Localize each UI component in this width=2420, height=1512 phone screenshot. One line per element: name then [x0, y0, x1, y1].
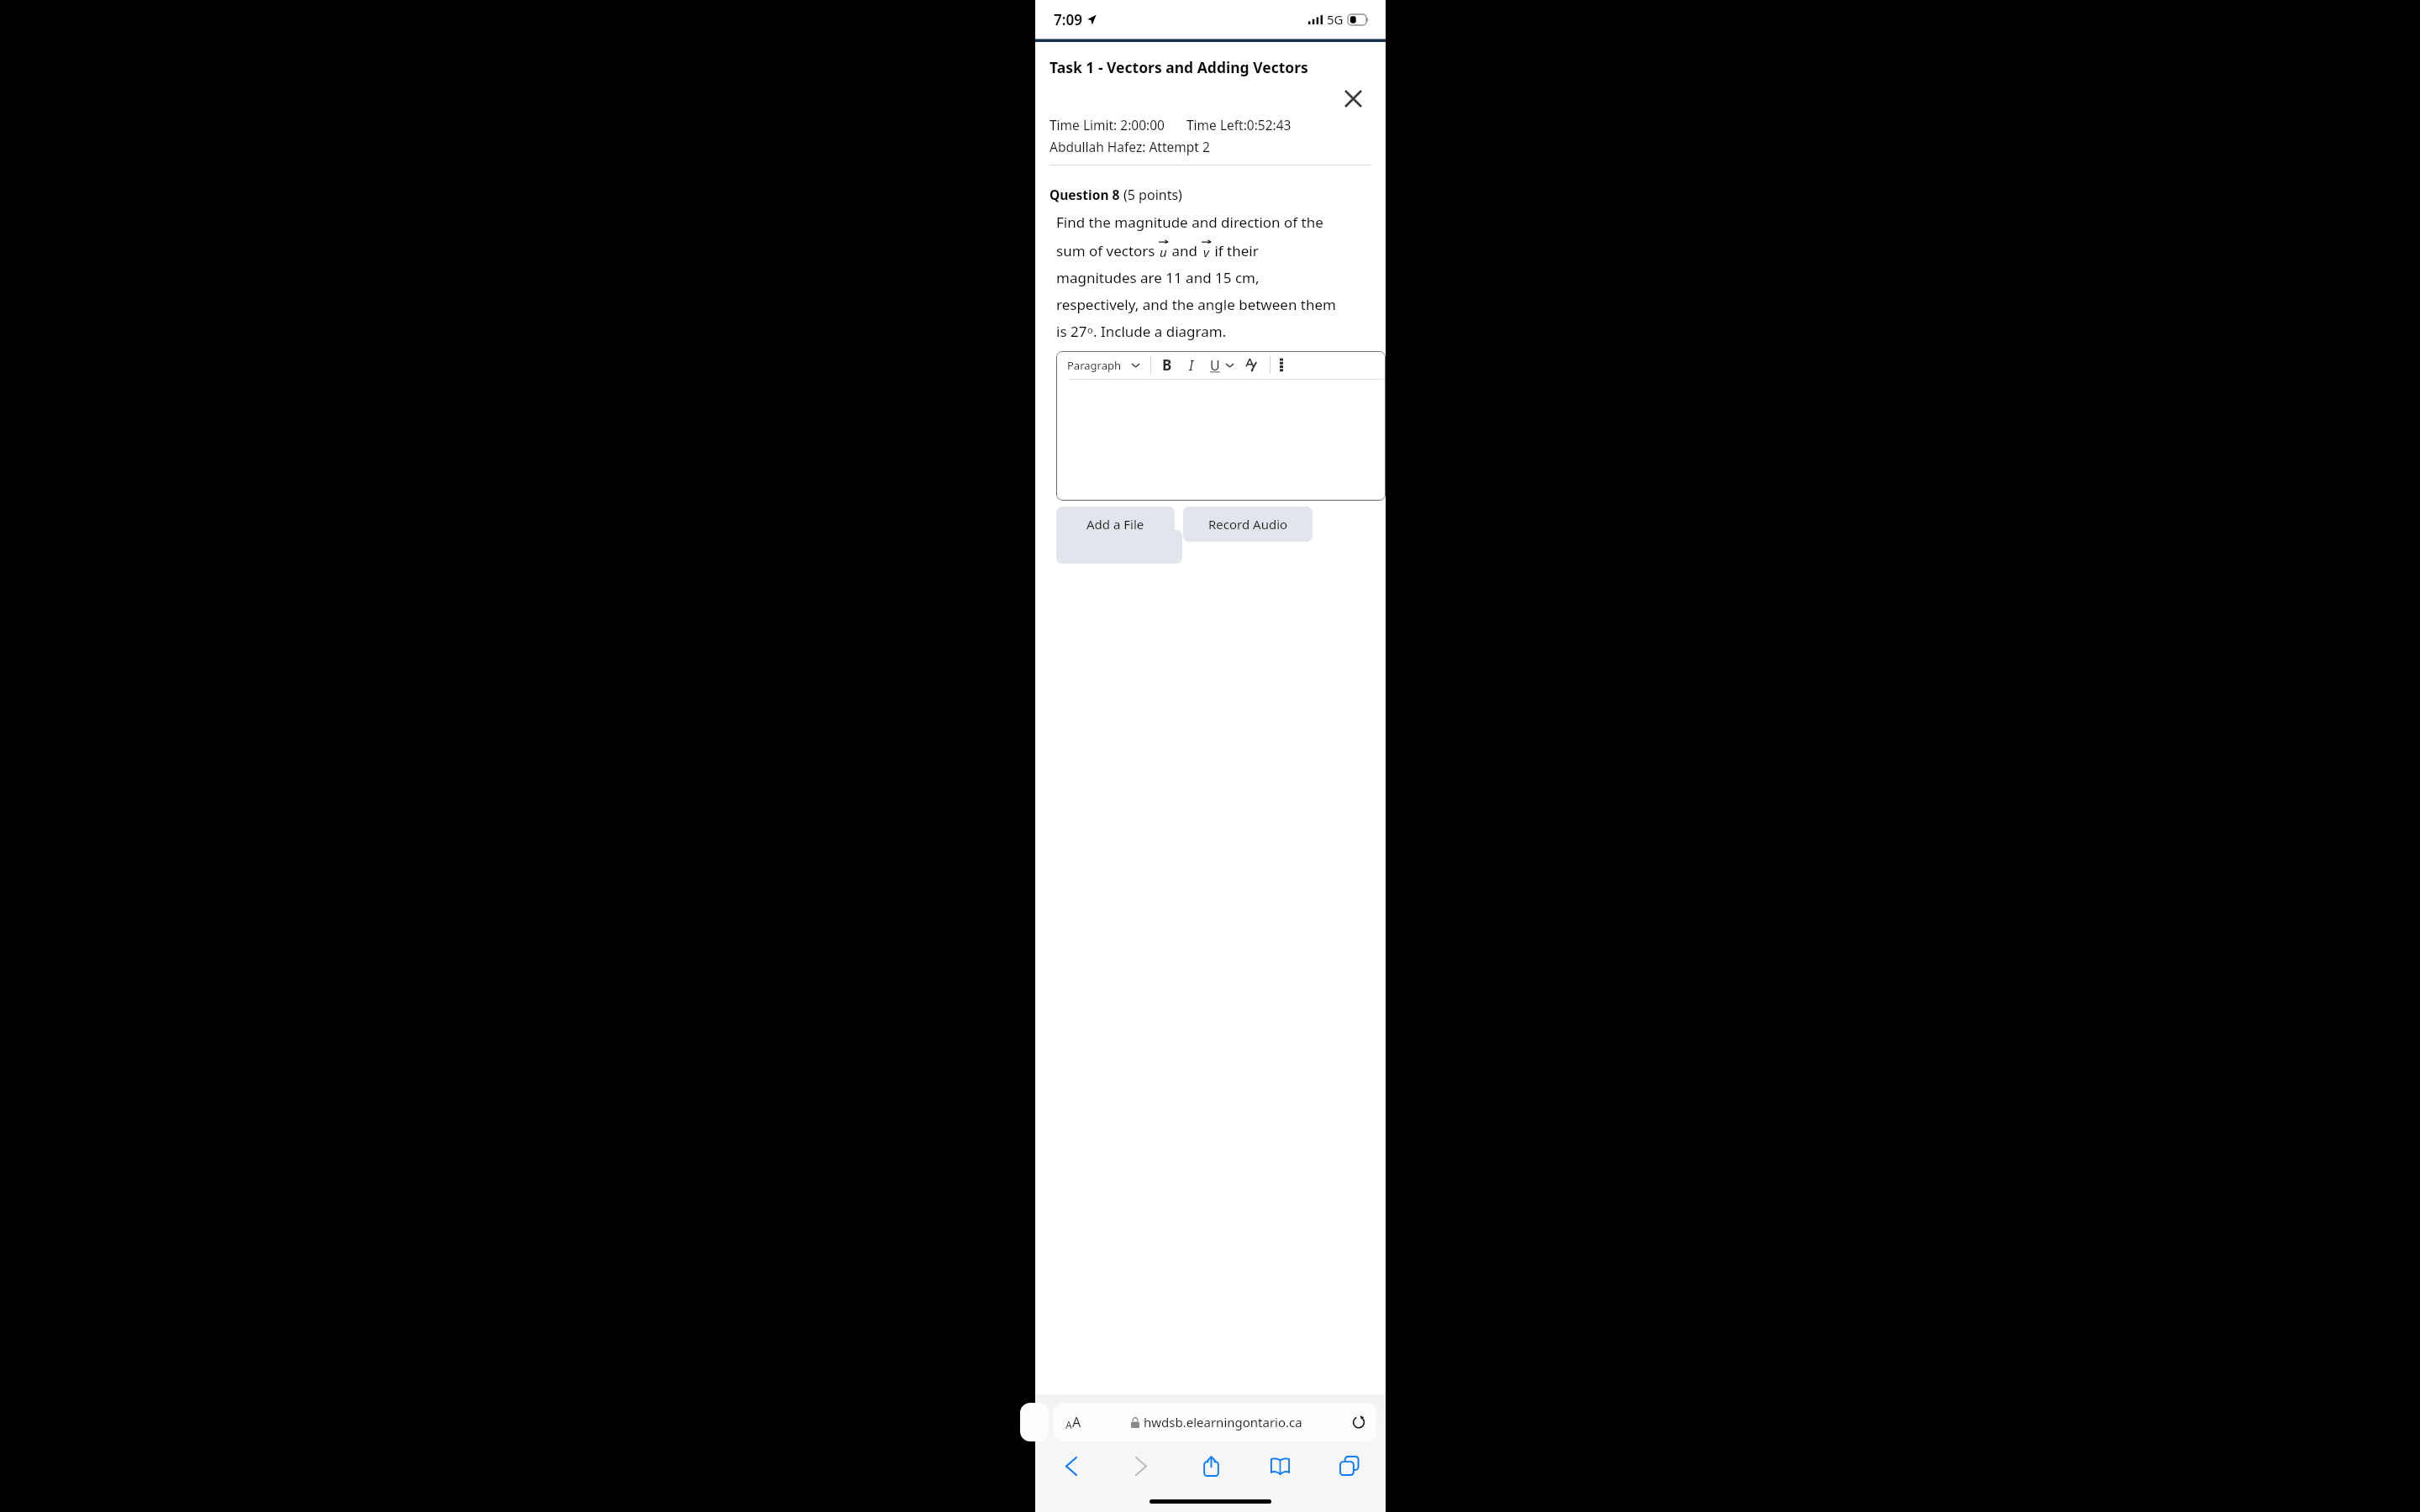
staticText: o: [1087, 323, 1093, 336]
button[interactable]: Paragraph: [1067, 358, 1143, 373]
staticText: magnitudes are 11 and 15 cm,: [1056, 268, 1260, 287]
staticText: Question 8: [1050, 186, 1120, 203]
staticText: if their: [1211, 241, 1259, 260]
button[interactable]: Text colour: [1245, 358, 1259, 372]
staticText: (5 points): [1123, 186, 1182, 204]
staticText: A: [1065, 1418, 1072, 1431]
staticText: and: [1168, 241, 1202, 260]
staticText: Record Audio: [1208, 516, 1288, 533]
button[interactable]: Forward: [1117, 1448, 1165, 1483]
staticText: U: [1210, 356, 1220, 375]
button[interactable]: More options: [1280, 358, 1283, 372]
button[interactable]: Add a File: [1056, 507, 1175, 542]
staticText: Add a File: [1086, 516, 1144, 533]
staticText: 7:09: [1054, 10, 1082, 29]
button[interactable]: Back: [1047, 1448, 1096, 1483]
staticText: Find the magnitude and direction of the: [1056, 213, 1323, 232]
staticText: Paragraph: [1067, 358, 1121, 373]
staticText: A: [1072, 1413, 1081, 1431]
staticText: u: [1160, 244, 1167, 260]
button[interactable]: [1056, 530, 1182, 564]
button[interactable]: Record Audio: [1183, 507, 1313, 542]
staticText: sum of vectors: [1056, 241, 1159, 260]
button[interactable]: Bold: [1162, 355, 1172, 375]
button[interactable]: Underline: [1210, 356, 1220, 375]
staticText: Abdullah Hafez: Attempt 2: [1050, 138, 1210, 155]
staticText: respectively, and the angle between them: [1056, 295, 1336, 314]
button[interactable]: Share: [1186, 1448, 1235, 1483]
button[interactable]: Tabs: [1325, 1448, 1374, 1483]
staticText: B: [1162, 355, 1172, 375]
staticText: Task 1 - Vectors and Adding Vectors: [1050, 57, 1308, 77]
staticText: Time Limit: 2:00:00: [1050, 116, 1165, 134]
button[interactable]: Previous tab: [1020, 1403, 1049, 1441]
staticText: is 27: [1056, 322, 1087, 341]
staticText: 5G: [1327, 11, 1344, 28]
button[interactable]: Close: [1339, 84, 1367, 113]
button[interactable]: Bookmarks: [1255, 1448, 1304, 1483]
staticText: Time Left:0:52:43: [1186, 116, 1292, 134]
button[interactable]: A: [1054, 1403, 1376, 1441]
staticText: I: [1189, 356, 1194, 375]
staticText: hwdsb.elearningontario.ca: [1144, 1414, 1302, 1431]
button[interactable]: Italic: [1189, 356, 1194, 375]
staticText: v: [1203, 244, 1210, 260]
staticText: . Include a diagram.: [1093, 322, 1227, 341]
